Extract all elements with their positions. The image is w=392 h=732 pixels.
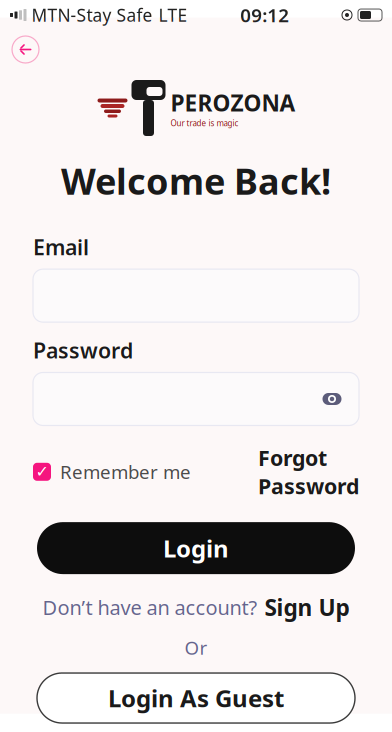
staticText: Forgot Password bbox=[258, 443, 359, 500]
button[interactable]: Show password bbox=[315, 382, 349, 416]
button[interactable]: Login bbox=[37, 522, 355, 574]
staticText: Don’t have an account? bbox=[42, 594, 257, 620]
staticText: Password bbox=[33, 336, 133, 364]
button[interactable]: Sign Up bbox=[264, 592, 349, 622]
staticText: Email bbox=[33, 233, 89, 261]
staticText: Remember me bbox=[60, 459, 191, 484]
staticText: Welcome Back! bbox=[61, 157, 331, 205]
staticText: ✓ bbox=[35, 463, 48, 481]
staticText: Or bbox=[184, 635, 207, 660]
staticText: 09:12 bbox=[240, 3, 289, 27]
staticText: Login As Guest bbox=[108, 682, 284, 714]
button[interactable]: Login As Guest bbox=[37, 673, 355, 723]
staticText: Our trade is magic bbox=[170, 118, 238, 128]
staticText: PEROZONA bbox=[170, 88, 295, 118]
button[interactable]: Back bbox=[12, 36, 39, 63]
staticText: Sign Up bbox=[264, 592, 349, 622]
staticText: LTE bbox=[158, 3, 187, 26]
staticText: Login bbox=[163, 532, 229, 564]
staticText: MTN-Stay Safe bbox=[31, 3, 152, 26]
button[interactable]: ✓ bbox=[33, 459, 191, 484]
button[interactable]: Forgot Password bbox=[258, 443, 359, 500]
